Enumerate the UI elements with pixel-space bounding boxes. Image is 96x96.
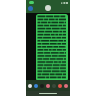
button[interactable]: App shortcut [58, 84, 62, 88]
button[interactable]: App shortcut [40, 84, 44, 88]
button[interactable]: App shortcut [34, 84, 38, 88]
button[interactable]: App shortcut [46, 84, 50, 88]
button[interactable]: Contact profile [45, 5, 51, 11]
button[interactable]: Back [28, 6, 33, 11]
button[interactable]: App shortcut [52, 84, 56, 88]
button[interactable] [36, 14, 68, 81]
button[interactable]: App shortcut [64, 84, 68, 88]
button[interactable]: App shortcut [28, 84, 32, 88]
